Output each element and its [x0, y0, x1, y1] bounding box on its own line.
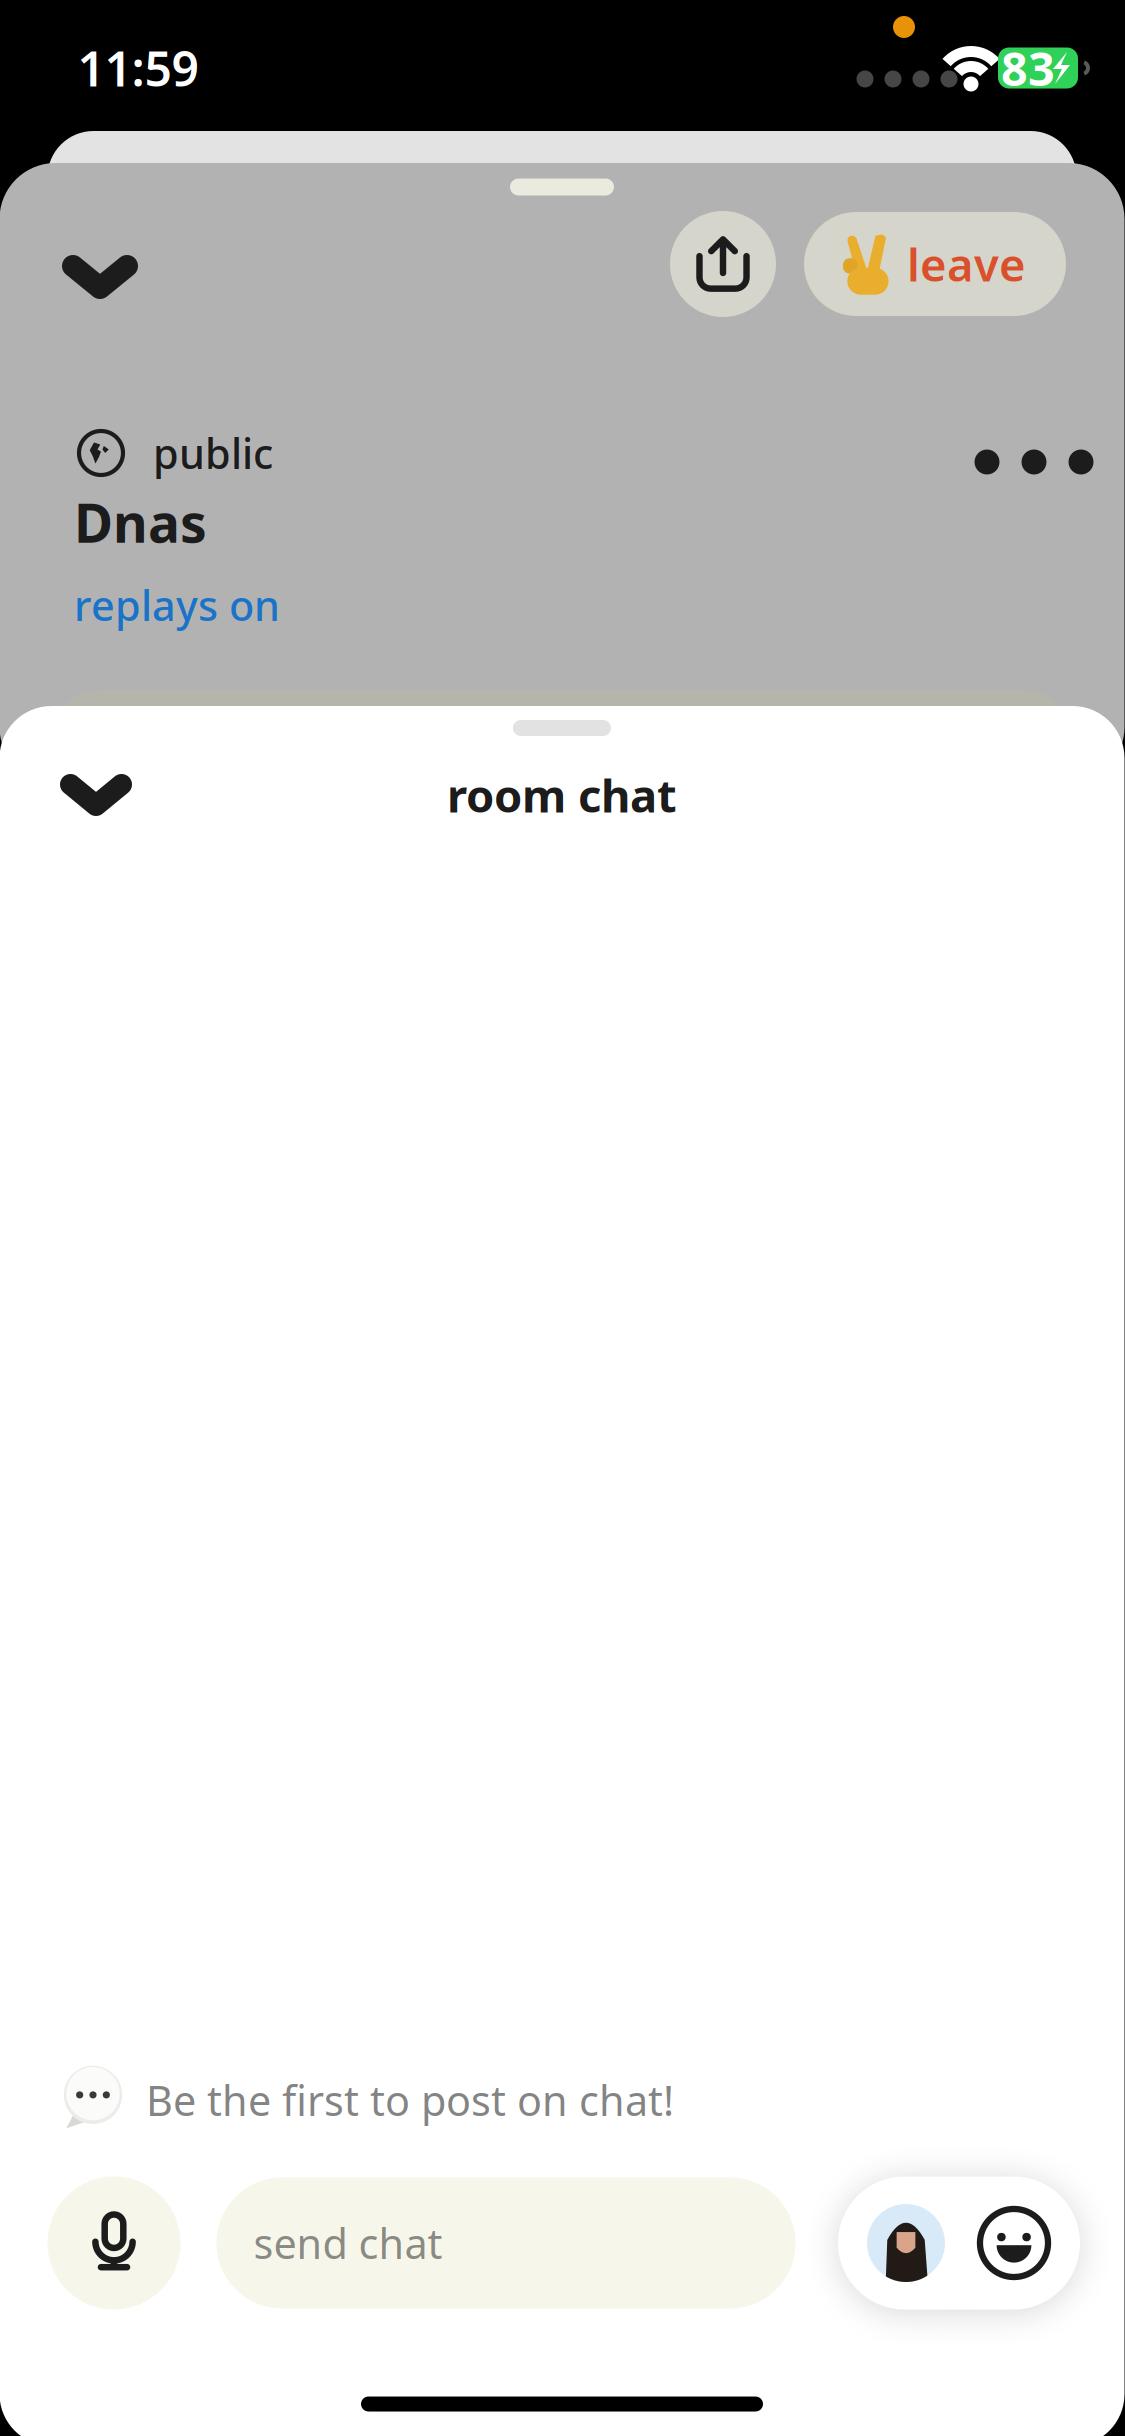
button[interactable]: Collapse room: [30, 217, 170, 337]
staticText: Be the first to post on chat!: [146, 2073, 674, 2127]
staticText: 83: [1001, 37, 1055, 99]
staticText: room chat: [447, 765, 677, 825]
button[interactable]: Collapse chat: [26, 735, 166, 855]
staticText: Dnas: [74, 487, 207, 557]
staticText: replays on: [74, 578, 280, 632]
staticText: public: [153, 426, 273, 480]
staticText: leave: [907, 234, 1026, 294]
staticText: 11:59: [77, 36, 198, 100]
button[interactable]: Reactions: [838, 2176, 1080, 2309]
button[interactable]: Share: [670, 211, 776, 317]
button[interactable]: leave: [804, 212, 1066, 316]
button[interactable]: More options: [959, 407, 1109, 517]
button[interactable]: send chat: [216, 2177, 795, 2308]
button[interactable]: Record voice message: [47, 2176, 180, 2309]
staticText: send chat: [253, 2216, 442, 2270]
